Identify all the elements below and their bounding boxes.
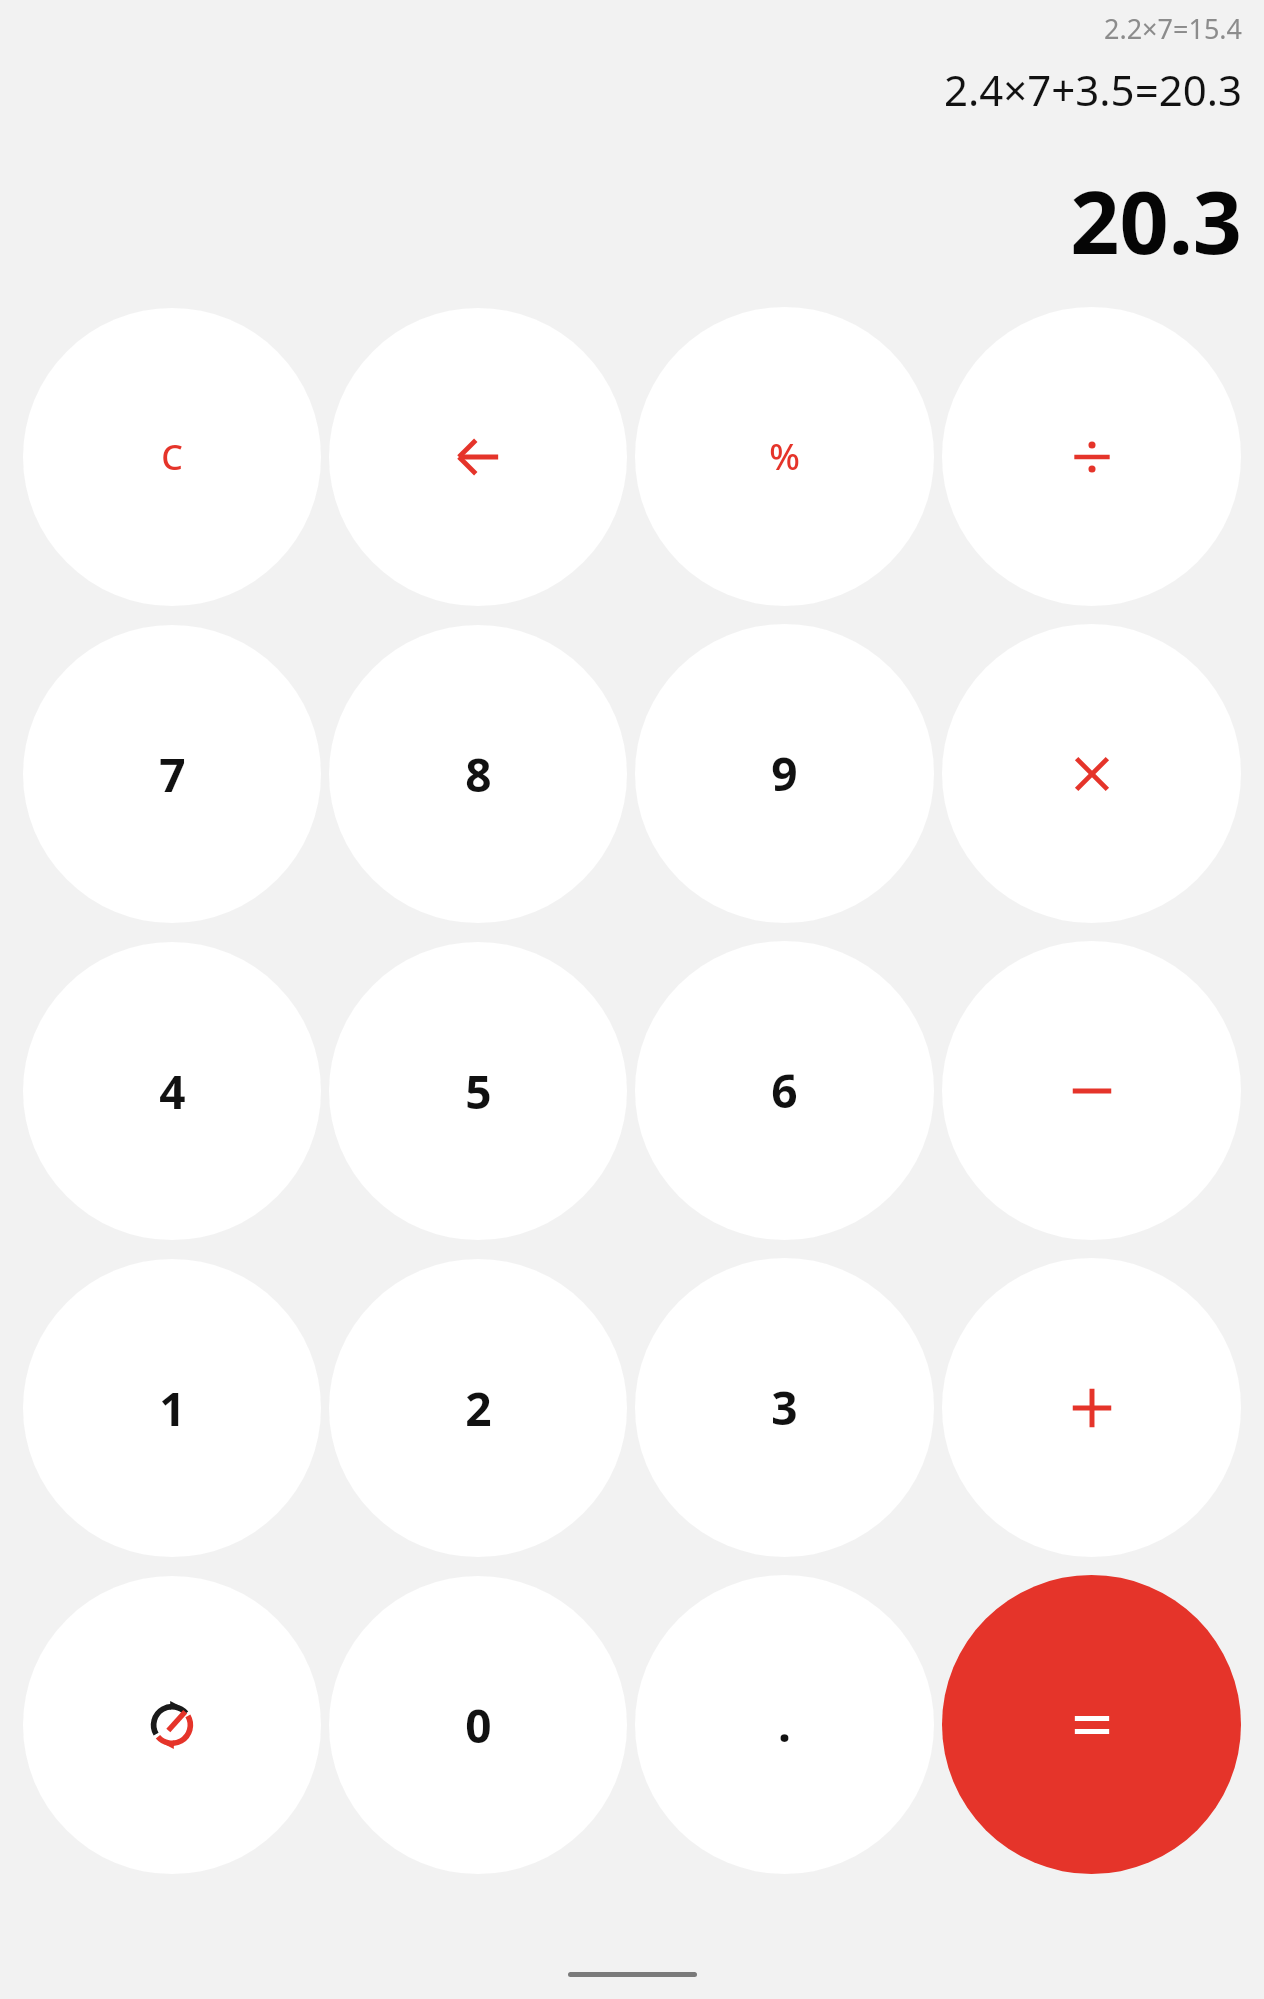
staticText: 7 xyxy=(159,743,186,806)
button[interactable]: 5 xyxy=(329,942,627,1240)
staticText: 2.4×7+3.5=20.3 xyxy=(24,61,1242,118)
staticText: 1 xyxy=(159,1377,186,1440)
button[interactable]: 9 xyxy=(635,624,934,923)
button[interactable]: 6 xyxy=(635,941,934,1240)
button[interactable]: Equals xyxy=(942,1575,1241,1874)
button[interactable]: % xyxy=(635,307,934,606)
staticText: . xyxy=(778,1693,791,1756)
staticText: 5 xyxy=(465,1060,492,1123)
button[interactable]: . xyxy=(635,1575,934,1874)
button[interactable]: Divide xyxy=(942,307,1241,606)
button[interactable]: Minus xyxy=(942,941,1241,1240)
button[interactable]: 2 xyxy=(329,1259,627,1557)
staticText: 4 xyxy=(159,1060,186,1123)
staticText: 2.2×7=15.4 xyxy=(24,10,1242,47)
staticText: % xyxy=(769,432,800,481)
button[interactable]: 4 xyxy=(23,942,321,1240)
staticText: 3 xyxy=(771,1376,798,1439)
button[interactable]: 0 xyxy=(329,1576,627,1874)
button[interactable]: C xyxy=(23,308,321,606)
button[interactable]: 1 xyxy=(23,1259,321,1557)
staticText: 2 xyxy=(465,1377,492,1440)
staticText: 8 xyxy=(465,743,492,806)
button[interactable]: 8 xyxy=(329,625,627,923)
staticText: 0 xyxy=(465,1694,492,1757)
button[interactable]: Plus xyxy=(942,1258,1241,1557)
staticText: 20.3 xyxy=(24,162,1242,279)
button[interactable]: Multiply xyxy=(942,624,1241,923)
button[interactable]: 3 xyxy=(635,1258,934,1557)
staticText: 6 xyxy=(771,1059,798,1122)
staticText: 9 xyxy=(771,742,798,805)
staticText: C xyxy=(161,434,183,480)
button[interactable]: Convert xyxy=(23,1576,321,1874)
button[interactable]: 7 xyxy=(23,625,321,923)
button[interactable]: Backspace xyxy=(329,308,627,606)
